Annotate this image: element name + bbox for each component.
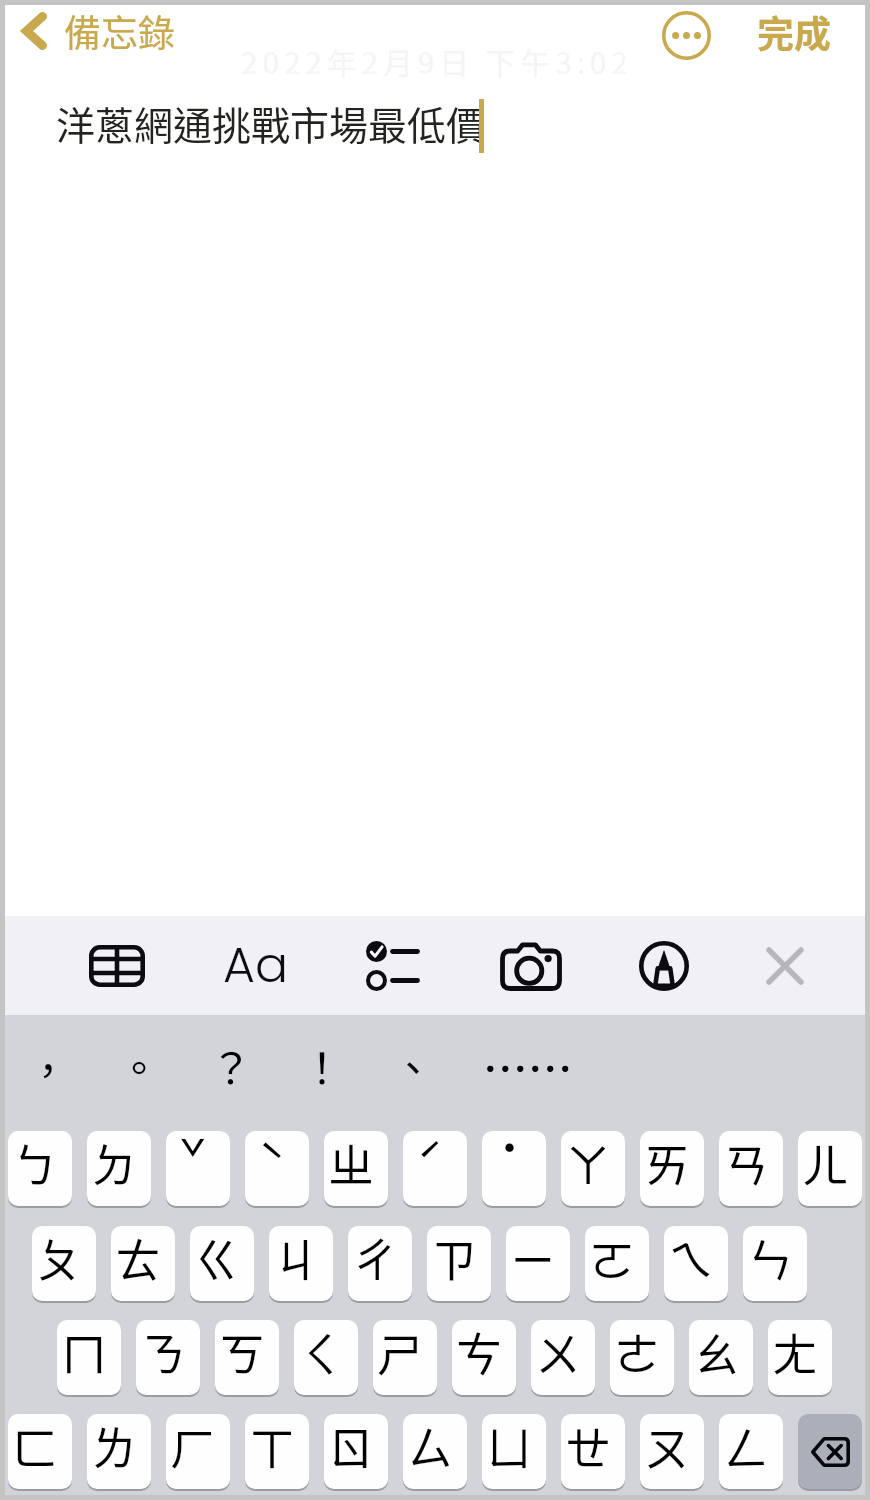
button[interactable]: ㄟ bbox=[664, 1226, 728, 1301]
staticText: ㄔ bbox=[352, 1226, 398, 1291]
button[interactable]: Markup bbox=[616, 921, 712, 1011]
staticText: ㄥ bbox=[723, 1414, 769, 1479]
button[interactable]: Camera bbox=[483, 921, 579, 1011]
button[interactable]: ˊ bbox=[403, 1131, 467, 1206]
staticText: ㄑ bbox=[298, 1320, 344, 1385]
staticText: ㄚ bbox=[565, 1131, 611, 1196]
staticText: ㄞ bbox=[644, 1131, 690, 1196]
button[interactable]: ㄅ bbox=[8, 1131, 72, 1206]
button[interactable]: ㄍ bbox=[190, 1226, 254, 1301]
button[interactable]: ㄋ bbox=[136, 1320, 200, 1395]
staticText: 洋蔥網通挑戰市場最低價 bbox=[56, 95, 486, 151]
staticText: ㄙ bbox=[407, 1414, 453, 1479]
button[interactable]: ㄨ bbox=[531, 1320, 595, 1395]
staticText: ㄆ bbox=[36, 1226, 82, 1291]
staticText: Aa bbox=[223, 931, 289, 1000]
other: Delete bbox=[798, 1414, 862, 1489]
button[interactable]: ㄕ bbox=[373, 1320, 437, 1395]
button[interactable]: ˋ bbox=[245, 1131, 309, 1206]
staticText: ㄦ bbox=[802, 1131, 848, 1196]
button[interactable]: ㄣ bbox=[743, 1226, 807, 1301]
staticText: ㄣ bbox=[747, 1226, 793, 1291]
staticText: ˇ bbox=[179, 1131, 207, 1190]
button[interactable]: ， bbox=[9, 1034, 87, 1112]
staticText: ㄅ bbox=[12, 1131, 58, 1196]
staticText: ㄡ bbox=[644, 1414, 690, 1479]
button[interactable]: 、 bbox=[374, 1034, 452, 1112]
button[interactable]: ㄚ bbox=[561, 1131, 625, 1206]
button[interactable]: ㄎ bbox=[215, 1320, 279, 1395]
button[interactable]: ㄘ bbox=[452, 1320, 516, 1395]
staticText: ㄇ bbox=[61, 1320, 107, 1385]
staticText: ㄕ bbox=[377, 1320, 423, 1385]
staticText: ㄛ bbox=[589, 1226, 635, 1291]
button[interactable]: Ellipsis bbox=[479, 1039, 577, 1107]
button[interactable]: ㄧ bbox=[506, 1226, 570, 1301]
button[interactable]: More options bbox=[654, 3, 719, 68]
button[interactable]: ！ bbox=[283, 1034, 361, 1112]
button[interactable]: ㄗ bbox=[427, 1226, 491, 1301]
staticText: ㄠ bbox=[693, 1320, 739, 1385]
button[interactable]: ㄐ bbox=[269, 1226, 333, 1301]
button[interactable]: ㄉ bbox=[87, 1131, 151, 1206]
staticText: ㄟ bbox=[668, 1226, 714, 1291]
staticText: ㄝ bbox=[565, 1414, 611, 1479]
button[interactable]: ㄊ bbox=[111, 1226, 175, 1301]
button[interactable]: ˇ bbox=[166, 1131, 230, 1206]
button[interactable]: ㄦ bbox=[798, 1131, 862, 1206]
staticText: ㄜ bbox=[614, 1320, 660, 1385]
staticText: ？ bbox=[210, 1035, 253, 1096]
staticText: ˋ bbox=[258, 1131, 286, 1194]
button[interactable]: ㄛ bbox=[585, 1226, 649, 1301]
button[interactable]: ㄞ bbox=[640, 1131, 704, 1206]
staticText: ㄤ bbox=[772, 1320, 818, 1385]
staticText: 完成 bbox=[757, 5, 831, 59]
staticText: 。 bbox=[118, 1035, 161, 1096]
staticText: ㄖ bbox=[328, 1414, 374, 1479]
staticText: 、 bbox=[392, 1035, 435, 1096]
button[interactable]: ㄑ bbox=[294, 1320, 358, 1395]
staticText: ㄗ bbox=[431, 1226, 477, 1291]
staticText: ㄌ bbox=[91, 1414, 137, 1479]
button[interactable]: ㄒ bbox=[245, 1414, 309, 1489]
button[interactable]: Text format bbox=[208, 921, 304, 1011]
staticText: ㄢ bbox=[723, 1131, 769, 1196]
button[interactable]: 完成 bbox=[747, 0, 841, 67]
button[interactable]: Checklist bbox=[344, 921, 440, 1011]
button[interactable]: ㄢ bbox=[719, 1131, 783, 1206]
staticText: ㄊ bbox=[115, 1226, 161, 1291]
button[interactable]: ㄔ bbox=[348, 1226, 412, 1301]
staticText: ˙ bbox=[498, 1131, 521, 1179]
button[interactable]: Table bbox=[69, 921, 165, 1011]
button[interactable]: ㄙ bbox=[403, 1414, 467, 1489]
button[interactable]: ㄝ bbox=[561, 1414, 625, 1489]
button[interactable]: ㄌ bbox=[87, 1414, 151, 1489]
button[interactable]: ㄖ bbox=[324, 1414, 388, 1489]
button[interactable]: ㄜ bbox=[610, 1320, 674, 1395]
button[interactable]: ㄇ bbox=[57, 1320, 121, 1395]
staticText: ㄘ bbox=[456, 1320, 502, 1385]
button[interactable]: ㄤ bbox=[768, 1320, 832, 1395]
staticText: ㄉ bbox=[91, 1131, 137, 1196]
button[interactable]: ㄩ bbox=[482, 1414, 546, 1489]
staticText: ㄧ bbox=[510, 1226, 556, 1291]
button[interactable]: 。 bbox=[100, 1034, 178, 1112]
button[interactable]: Close keyboard bbox=[737, 921, 833, 1011]
staticText: ㄎ bbox=[219, 1320, 265, 1385]
staticText: 2022年2月9日 下午3:02 bbox=[241, 39, 633, 82]
staticText: ㄩ bbox=[486, 1414, 532, 1479]
button[interactable]: ㄏ bbox=[166, 1414, 230, 1489]
button[interactable]: ㄡ bbox=[640, 1414, 704, 1489]
button[interactable]: ㄠ bbox=[689, 1320, 753, 1395]
button[interactable]: ㄆ bbox=[32, 1226, 96, 1301]
button[interactable]: ㄓ bbox=[324, 1131, 388, 1206]
button[interactable]: 備忘錄 bbox=[12, 0, 185, 66]
button[interactable]: ㄥ bbox=[719, 1414, 783, 1489]
staticText: ㄈ bbox=[12, 1414, 58, 1479]
staticText: ㄒ bbox=[249, 1414, 295, 1479]
staticText: ㄏ bbox=[170, 1414, 216, 1479]
button[interactable]: ˙ bbox=[482, 1131, 546, 1206]
button[interactable]: ㄈ bbox=[8, 1414, 72, 1489]
button[interactable]: ？ bbox=[192, 1034, 270, 1112]
button[interactable]: Delete bbox=[798, 1414, 862, 1489]
